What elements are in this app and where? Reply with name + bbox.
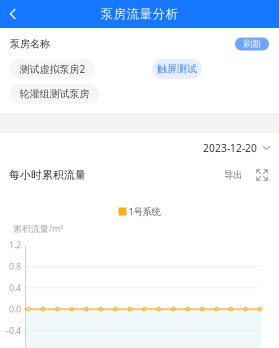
staticText: 泵房流量分析 xyxy=(100,6,178,22)
staticText: 导出 xyxy=(224,169,242,181)
staticText: 2023-12-20 xyxy=(203,141,257,155)
button[interactable]: 测试虚拟泵房2 xyxy=(10,59,95,79)
staticText: -0.4 xyxy=(6,325,21,336)
staticText: 刷新 xyxy=(243,38,261,50)
staticText: 触屏测试 xyxy=(157,63,197,75)
staticText: 0.4 xyxy=(9,282,21,294)
staticText: 0.0 xyxy=(9,303,21,315)
staticText: 0.8 xyxy=(9,260,21,272)
staticText: 1.2 xyxy=(9,239,21,251)
button[interactable]: 触屏测试 xyxy=(152,59,202,79)
staticText: 累积流量/m³ xyxy=(13,223,63,234)
button[interactable]: Back xyxy=(0,0,26,28)
staticText: 每小时累积流量 xyxy=(9,168,86,182)
staticText: 1号系统 xyxy=(128,205,160,218)
staticText: 测试虚拟泵房2 xyxy=(19,62,85,76)
button[interactable]: 2023-12-20 xyxy=(203,139,279,157)
staticText: 泵房名称 xyxy=(10,38,50,50)
button[interactable]: 轮灌组测试泵房 xyxy=(10,84,99,104)
button[interactable]: 导出 xyxy=(221,167,245,183)
staticText: 轮灌组测试泵房 xyxy=(19,88,89,100)
button[interactable]: 刷新 xyxy=(235,37,269,50)
button[interactable]: Fullscreen xyxy=(254,167,270,183)
